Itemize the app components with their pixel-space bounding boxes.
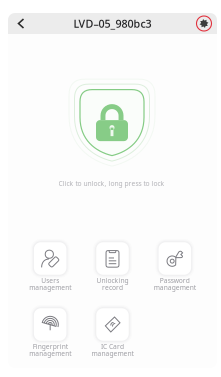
button[interactable]: Password xyxy=(144,242,206,292)
button[interactable]: Settings xyxy=(191,13,217,34)
button[interactable]: Back xyxy=(8,13,34,34)
button[interactable]: IC Card xyxy=(81,308,144,358)
staticText: management xyxy=(91,349,133,358)
staticText: Users xyxy=(41,276,59,285)
staticText: Click to unlock, long press to lock xyxy=(58,179,164,188)
button[interactable]: Unlocking xyxy=(81,242,144,292)
staticText: management xyxy=(29,283,71,292)
staticText: management xyxy=(154,283,196,292)
staticText: LVD–05_980bc3 xyxy=(73,16,151,31)
staticText: management xyxy=(29,349,71,358)
staticText: Unlocking xyxy=(96,276,128,285)
staticText: record xyxy=(102,283,123,292)
button[interactable]: Fingerprint xyxy=(19,308,81,358)
staticText: Fingerprint xyxy=(33,342,68,351)
button[interactable]: Users xyxy=(19,242,81,292)
staticText: Password xyxy=(160,276,190,285)
staticText: IC Card xyxy=(101,342,124,351)
